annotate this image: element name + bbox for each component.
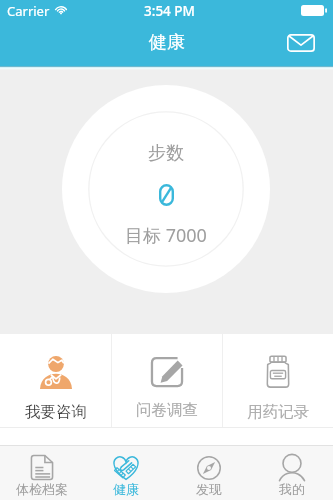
staticText: 我要咨询 [25,402,87,422]
button[interactable]: 用药记录 [223,334,333,427]
staticText: 发现 [196,481,222,497]
staticText: 体检档案 [16,481,68,497]
staticText: 健康 [113,481,139,497]
staticText: 我的 [279,481,305,497]
button[interactable]: 发现 [167,446,250,500]
staticText: 健康 [149,31,185,54]
staticText: Carrier [7,2,50,20]
staticText: 用药记录 [247,402,309,422]
button[interactable]: 体检档案 [0,446,84,500]
staticText: 3:54 PM [144,2,195,20]
staticText: 步数 [148,142,184,165]
staticText: 目标 7000 [125,223,207,248]
button[interactable]: 问卷调查 [112,334,222,427]
button[interactable]: Messages [283,25,319,61]
button[interactable]: 健康 [84,446,167,500]
button[interactable]: 我的 [250,446,333,500]
staticText: 问卷调查 [136,400,198,420]
button[interactable]: 我要咨询 [0,334,111,427]
